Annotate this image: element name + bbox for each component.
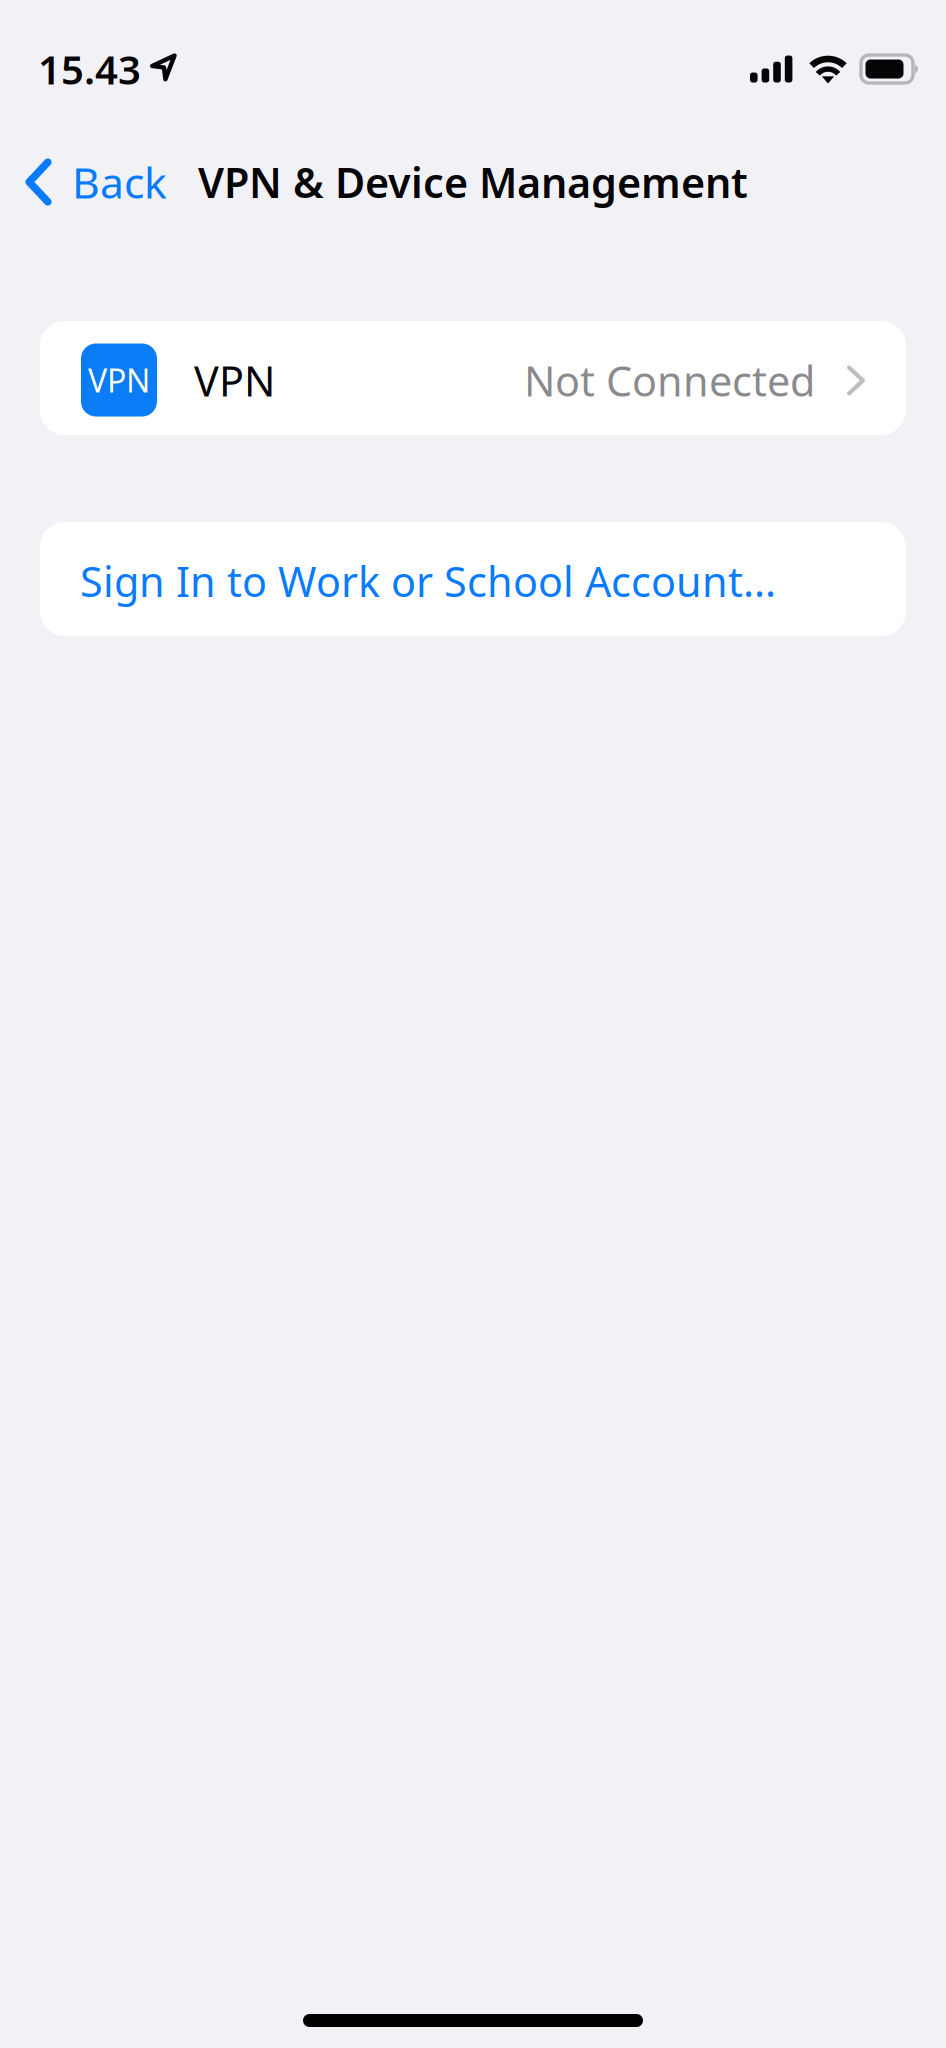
staticText: Sign In to Work or School Account... xyxy=(80,554,776,608)
button[interactable]: Back xyxy=(0,142,181,222)
button[interactable]: Sign In to Work or School Account... xyxy=(40,522,906,636)
staticText: Not Connected xyxy=(524,353,815,408)
staticText: Back xyxy=(72,154,167,210)
staticText: VPN & Device Management xyxy=(198,155,748,209)
button[interactable]: VPN xyxy=(40,321,906,435)
staticText: VPN xyxy=(194,353,275,408)
staticText: VPN xyxy=(88,359,150,401)
staticText: 15.43 xyxy=(38,42,141,95)
